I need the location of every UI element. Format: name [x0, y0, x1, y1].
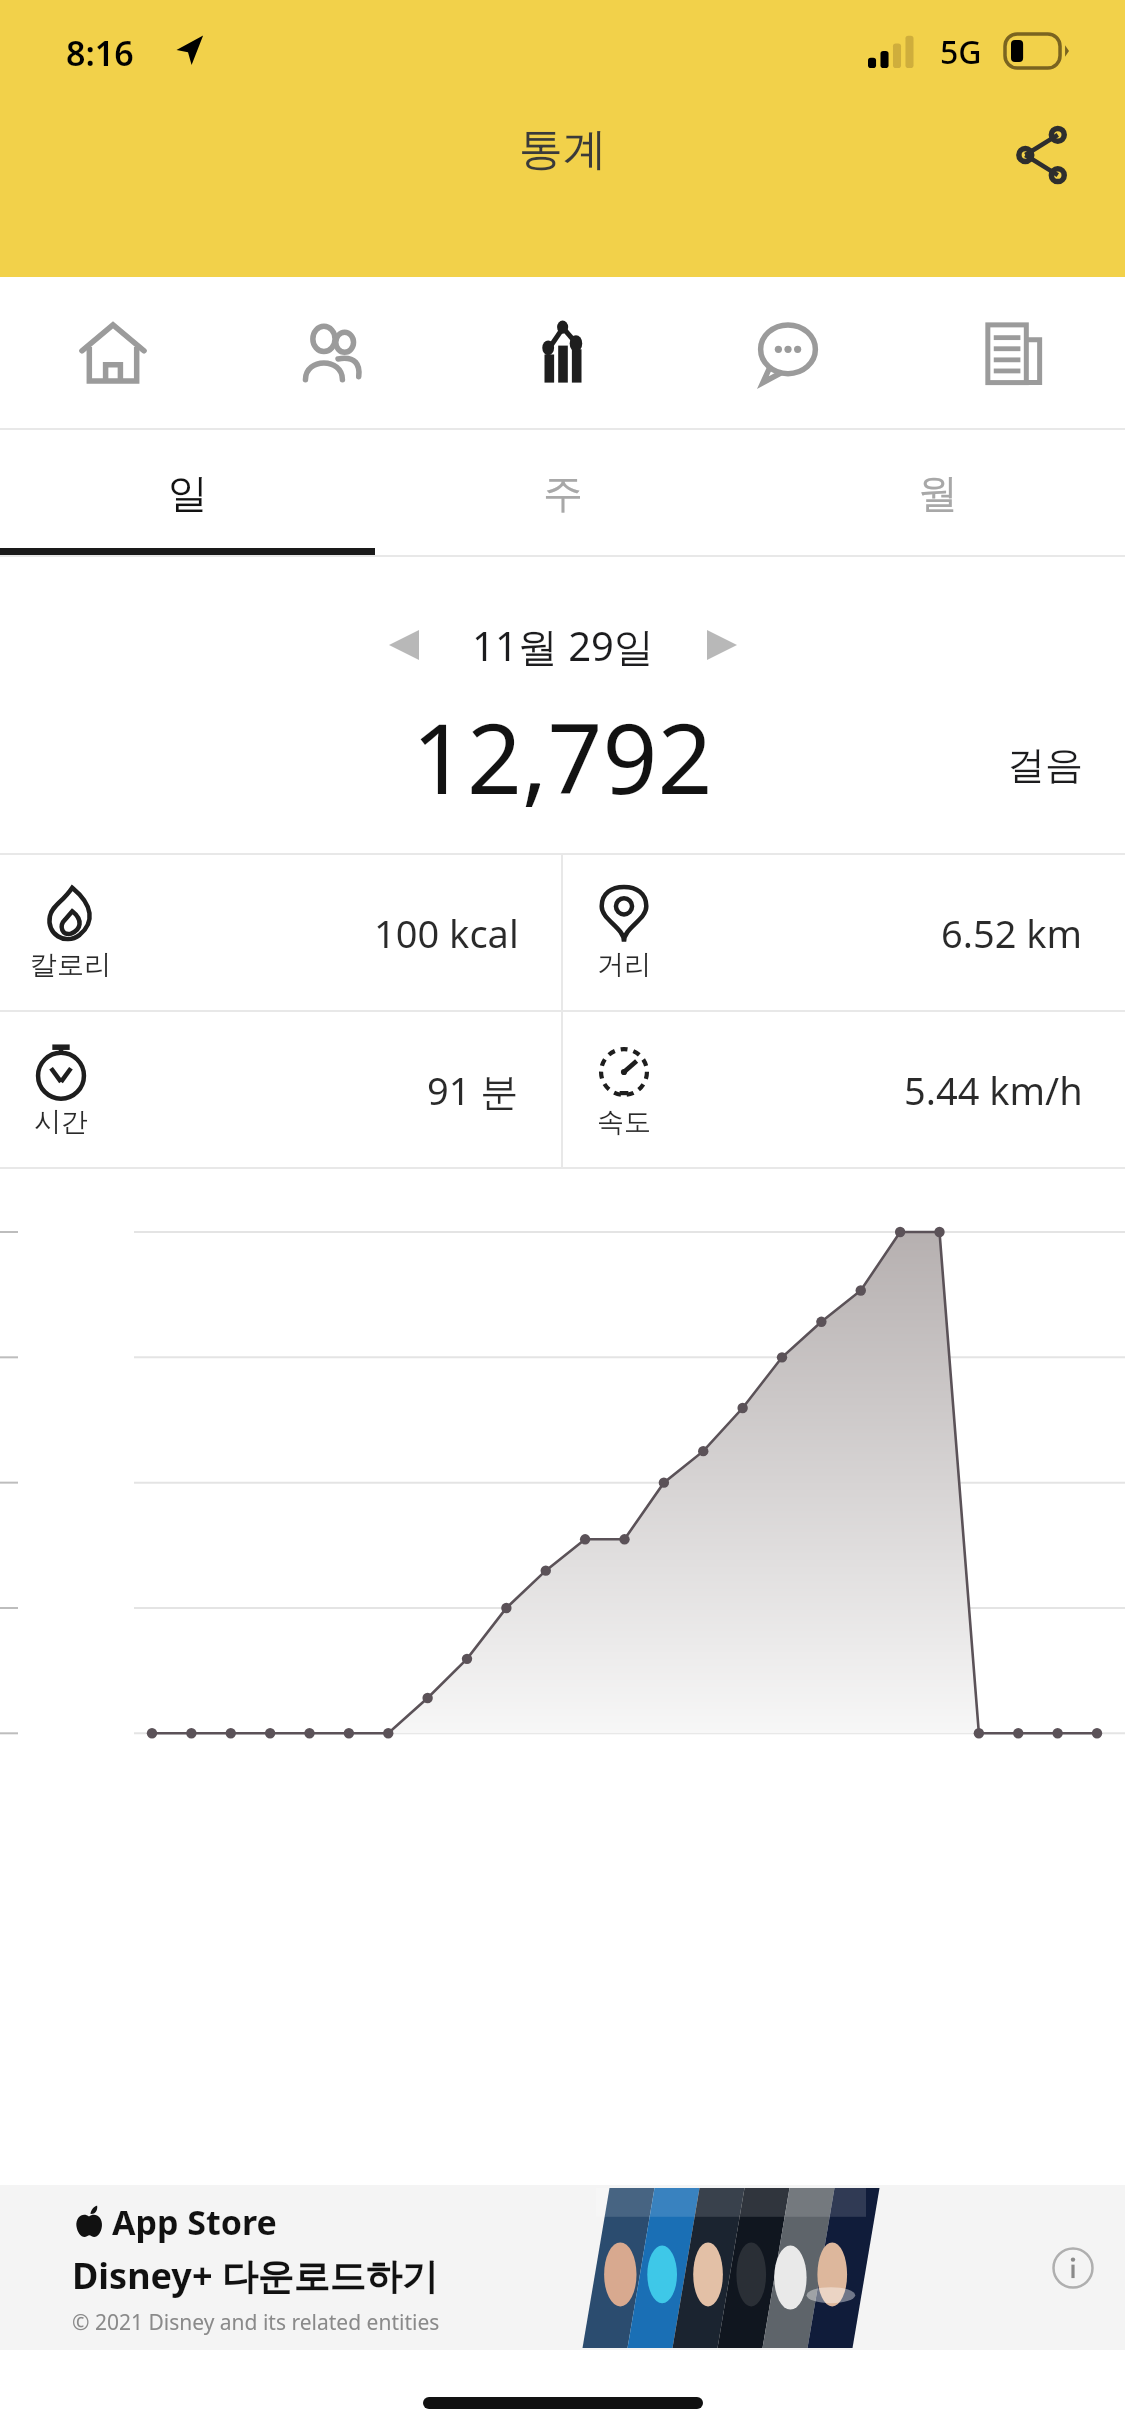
button[interactable]: 시간	[0, 1012, 561, 1167]
staticText: © 2021 Disney and its related entities	[72, 2308, 440, 2337]
button[interactable]: 속도	[563, 1012, 1125, 1167]
staticText: 통계	[519, 122, 607, 177]
staticText: 시간	[34, 1105, 88, 1139]
button[interactable]: News	[900, 277, 1125, 428]
button[interactable]: Statistics	[450, 277, 675, 428]
staticText: 속도	[597, 1105, 651, 1139]
button[interactable]: Chat	[675, 277, 900, 428]
staticText: 100 kcal	[374, 907, 519, 959]
staticText: 일	[168, 468, 208, 518]
staticText: 주	[543, 468, 583, 518]
staticText: Disney+ 다운로드하기	[72, 2251, 438, 2300]
staticText: 11월 29일	[472, 618, 654, 673]
button[interactable]: Previous day	[368, 609, 440, 681]
button[interactable]: Friends	[225, 277, 450, 428]
staticText: 12,792	[412, 691, 713, 811]
button[interactable]: 월	[750, 430, 1125, 555]
button[interactable]: App Store	[0, 2185, 1125, 2350]
staticText: 6.52 km	[941, 907, 1083, 959]
staticText: App Store	[112, 2199, 277, 2245]
button[interactable]: 주	[375, 430, 750, 555]
button[interactable]: 거리	[563, 855, 1125, 1010]
button[interactable]: Next day	[686, 609, 758, 681]
button[interactable]: 칼로리	[0, 855, 561, 1010]
staticText: 걸음	[1007, 741, 1083, 789]
button[interactable]: Share	[997, 111, 1085, 199]
staticText: 91 분	[427, 1064, 519, 1116]
staticText: 8:16	[66, 30, 134, 76]
button[interactable]: Ad info	[1045, 2240, 1101, 2296]
button[interactable]: Home	[0, 277, 225, 428]
button[interactable]: 일	[0, 430, 375, 555]
staticText: 월	[918, 468, 958, 518]
staticText: 5.44 km/h	[904, 1064, 1083, 1116]
staticText: 거리	[597, 948, 651, 982]
staticText: 칼로리	[30, 948, 111, 982]
staticText: 5G	[940, 30, 982, 74]
